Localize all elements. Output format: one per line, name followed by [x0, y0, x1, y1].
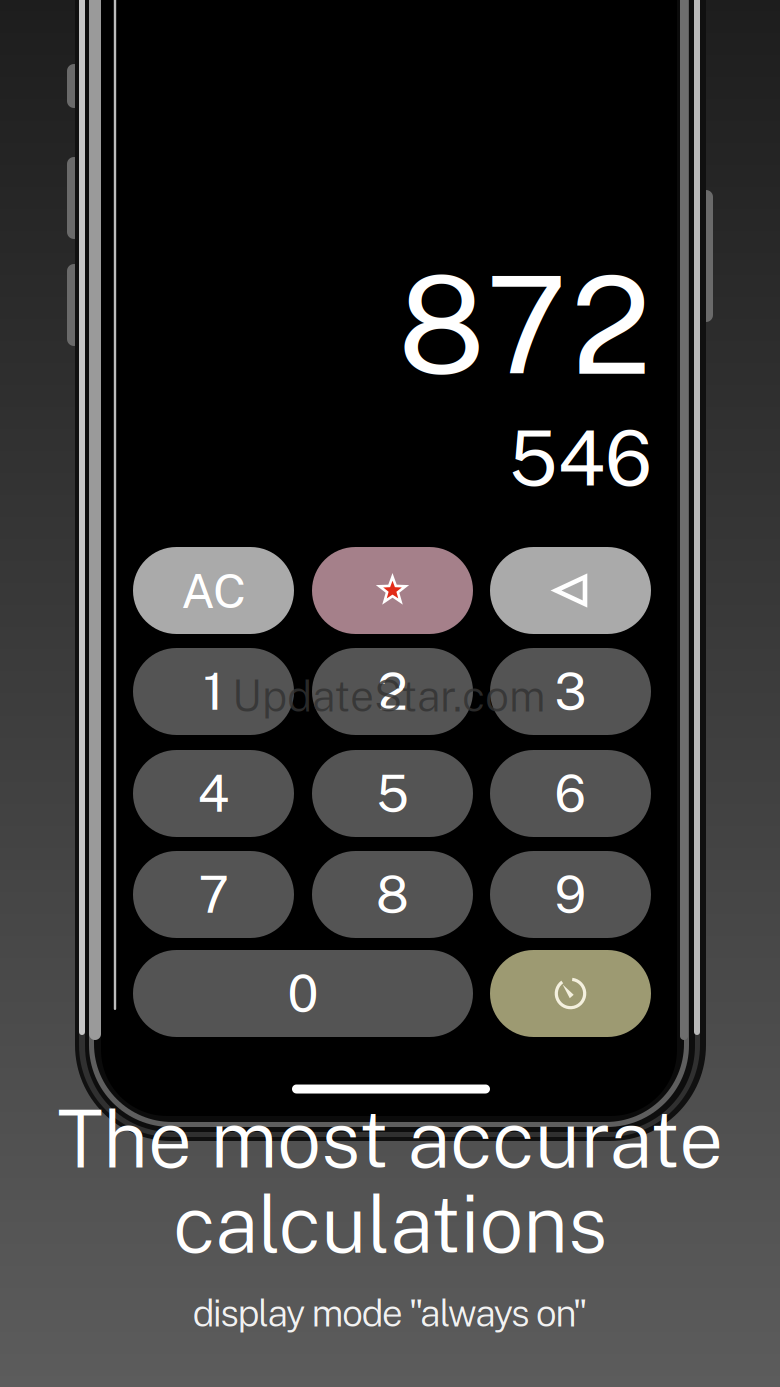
button[interactable]: 5	[312, 750, 473, 837]
staticText: 7	[198, 865, 228, 924]
button[interactable]: 9	[490, 851, 651, 938]
staticText: 546	[509, 413, 652, 503]
button[interactable]: 2	[312, 648, 473, 735]
staticText: 9	[554, 865, 586, 924]
staticText: The most accurate	[57, 1093, 723, 1185]
button[interactable]: 6	[490, 750, 651, 837]
button[interactable]: Favourite	[312, 547, 473, 634]
button[interactable]: 0	[133, 950, 473, 1037]
staticText: 6	[554, 764, 586, 823]
staticText: 2	[377, 662, 407, 721]
button[interactable]: 8	[312, 851, 473, 938]
staticText: 5	[376, 764, 408, 823]
staticText: 1	[203, 662, 224, 721]
button[interactable]: History	[490, 950, 651, 1037]
button[interactable]: 1	[133, 648, 294, 735]
staticText: display mode "always on"	[192, 1291, 588, 1335]
staticText: 872	[398, 246, 651, 404]
button[interactable]: 7	[133, 851, 294, 938]
button[interactable]: 3	[490, 648, 651, 735]
staticText: calculations	[173, 1178, 607, 1270]
staticText: 3	[554, 662, 586, 721]
button[interactable]: Delete	[490, 547, 651, 634]
button[interactable]: 4	[133, 750, 294, 837]
staticText: 4	[197, 764, 229, 823]
staticText: UpdateStar.com	[232, 671, 546, 721]
staticText: 8	[376, 865, 409, 924]
staticText: 0	[287, 964, 318, 1023]
button[interactable]: AC	[133, 547, 294, 634]
staticText: AC	[181, 562, 246, 619]
